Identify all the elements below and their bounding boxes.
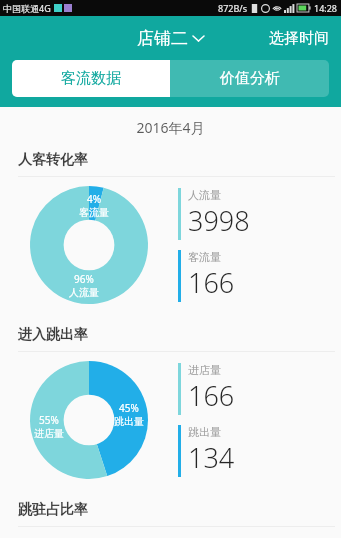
staticText: 跳驻占比率 (18, 501, 88, 519)
staticText: 客流量 (79, 206, 109, 219)
staticText: 店铺二 (137, 28, 188, 49)
staticText: 进入跳出率 (18, 326, 88, 344)
staticText: 134 (188, 439, 235, 476)
staticText: 价值分析 (220, 69, 280, 88)
staticText: 中国联通4G (3, 2, 51, 14)
button[interactable]: 客流数据 (12, 60, 170, 97)
staticText: 跳出量 (114, 415, 144, 428)
staticText: 45% (119, 401, 139, 415)
staticText: 人流量 (188, 188, 221, 202)
staticText: 进店量 (34, 427, 64, 440)
button[interactable]: 选择时间 (257, 21, 341, 56)
staticText: 55% (39, 413, 59, 427)
staticText: 客流数据 (61, 69, 121, 88)
staticText: 96% (74, 272, 94, 286)
staticText: 14:28 (314, 2, 338, 14)
button[interactable]: 价值分析 (170, 60, 329, 97)
button[interactable]: 店铺二 (129, 24, 212, 53)
staticText: 4% (87, 192, 102, 206)
staticText: 进店量 (188, 363, 221, 377)
staticText: 人流量 (69, 286, 99, 299)
staticText: 166 (188, 264, 235, 301)
staticText: 人客转化率 (18, 151, 88, 169)
staticText: 166 (188, 377, 235, 414)
staticText: 872B/s (218, 2, 247, 14)
staticText: 跳出量 (188, 425, 221, 439)
staticText: 2016年4月 (0, 118, 341, 137)
staticText: 客流量 (188, 250, 221, 264)
staticText: 选择时间 (269, 29, 329, 48)
staticText: 3998 (188, 202, 250, 239)
